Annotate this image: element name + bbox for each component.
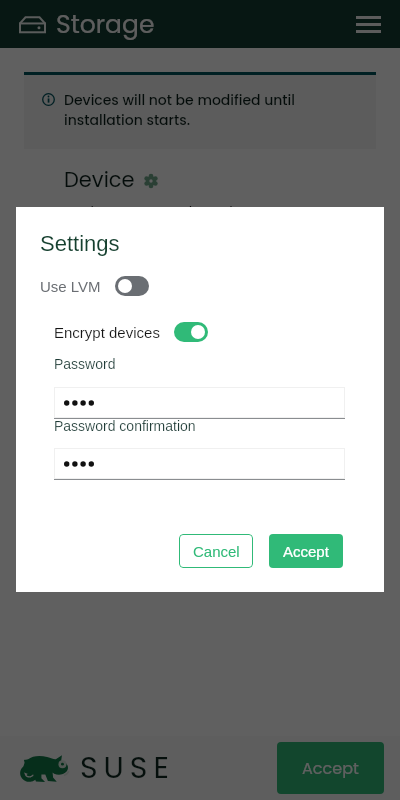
staticText: Encrypt devices [54, 324, 160, 341]
staticText: Accept [283, 543, 329, 560]
staticText: Password confirmation [54, 418, 196, 434]
staticText: Storage [56, 7, 155, 42]
button[interactable]: Accept [277, 742, 384, 794]
staticText: Settings [40, 231, 120, 256]
button[interactable]: Menu [344, 0, 392, 48]
staticText: Device [64, 165, 135, 194]
button[interactable]: Password input [54, 448, 345, 480]
button[interactable]: Cancel [179, 534, 253, 568]
staticText: Password [54, 356, 116, 372]
staticText: SUSE [80, 747, 175, 789]
staticText: Accept [302, 757, 359, 779]
staticText: Cancel [193, 543, 240, 560]
staticText: Use LVM [40, 278, 101, 295]
button[interactable]: Accept [269, 534, 343, 568]
button[interactable]: Toggle on [174, 322, 208, 342]
staticText: Device content selected [64, 202, 233, 222]
staticText: Devices will not be modified until insta… [64, 90, 360, 130]
button[interactable]: Password input [54, 387, 345, 419]
button[interactable]: Toggle off [115, 276, 149, 296]
button[interactable]: Device settings [144, 174, 158, 188]
button[interactable]: Encrypt devices [54, 319, 208, 345]
button[interactable]: Use LVM [40, 273, 149, 299]
